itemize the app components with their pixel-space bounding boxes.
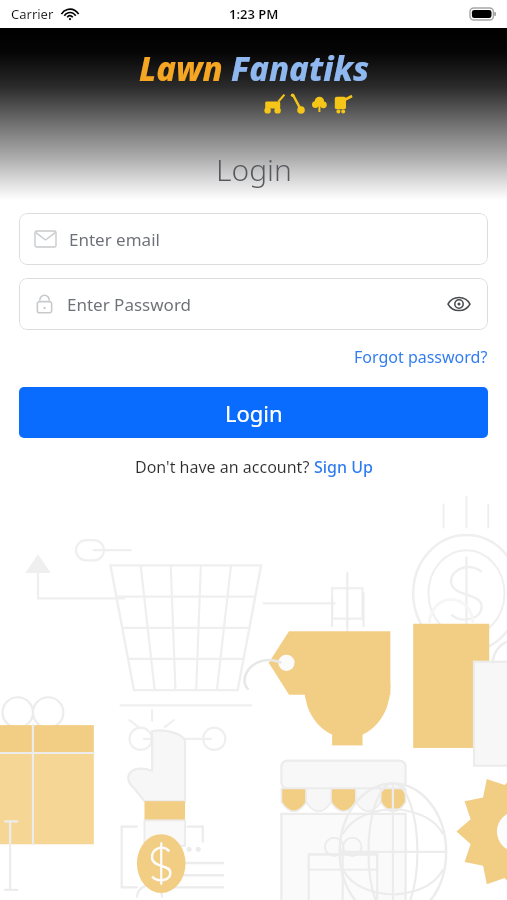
- button[interactable]: Enter email: [19, 213, 488, 265]
- staticText: Enter email: [69, 228, 160, 251]
- staticText: Don't have an account?: [135, 456, 314, 478]
- staticText: Lawn: [139, 46, 223, 91]
- button[interactable]: Show password: [444, 289, 474, 319]
- staticText: Login: [216, 149, 292, 190]
- staticText: Sign Up: [314, 456, 373, 478]
- button[interactable]: Sign Up: [314, 456, 373, 478]
- staticText: Fanatiks: [231, 46, 369, 91]
- staticText: Forgot password?: [354, 346, 488, 368]
- button[interactable]: Enter Password: [19, 278, 488, 330]
- staticText: 1:23 PM: [229, 5, 279, 23]
- staticText: Login: [225, 398, 283, 428]
- button[interactable]: Login: [19, 387, 488, 438]
- staticText: Carrier: [11, 5, 54, 23]
- staticText: Enter Password: [67, 293, 444, 316]
- button[interactable]: Forgot password?: [335, 342, 507, 372]
